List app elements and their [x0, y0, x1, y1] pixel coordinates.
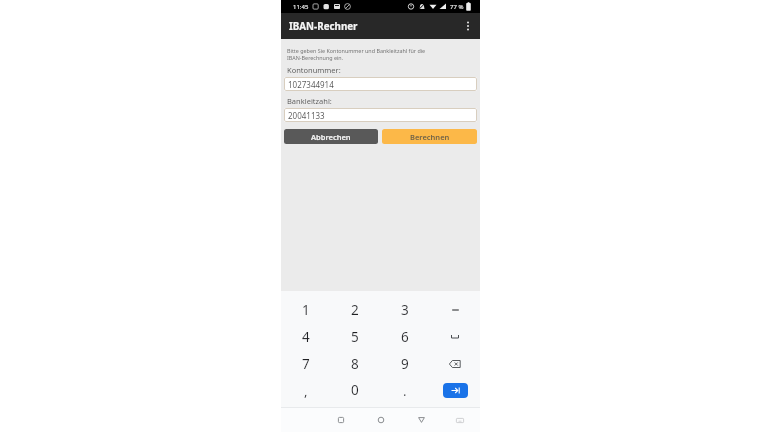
- button[interactable]: 7: [281, 350, 330, 377]
- staticText: 20041133: [288, 110, 325, 121]
- button[interactable]: 20041133: [284, 108, 477, 122]
- button[interactable]: 2: [330, 296, 380, 323]
- button[interactable]: 3: [380, 296, 430, 323]
- button[interactable]: [333, 412, 349, 428]
- staticText: 0: [351, 381, 359, 399]
- staticText: Bankleitzahl:: [287, 96, 332, 106]
- staticText: 2: [351, 301, 359, 319]
- staticText: IBAN-Rechner: [289, 20, 358, 33]
- button[interactable]: 1: [281, 296, 330, 323]
- button[interactable]: Abbrechen: [284, 129, 378, 144]
- button[interactable]: [430, 377, 480, 403]
- button[interactable]: .: [380, 377, 430, 403]
- button[interactable]: ,: [281, 377, 330, 403]
- staticText: 3: [401, 301, 409, 319]
- button[interactable]: [430, 350, 480, 377]
- button[interactable]: [430, 323, 480, 350]
- button[interactable]: [454, 414, 466, 426]
- button[interactable]: 8: [330, 350, 380, 377]
- button[interactable]: 0: [330, 377, 380, 403]
- staticText: 11:45: [293, 3, 309, 11]
- button[interactable]: [443, 383, 468, 398]
- staticText: .: [403, 382, 407, 400]
- button[interactable]: 6: [380, 323, 430, 350]
- button[interactable]: [463, 21, 473, 31]
- staticText: 8: [351, 355, 359, 373]
- staticText: 4: [302, 328, 310, 346]
- staticText: 5: [351, 328, 359, 346]
- button[interactable]: 5: [330, 323, 380, 350]
- button[interactable]: [413, 412, 429, 428]
- staticText: 9: [401, 355, 409, 373]
- button[interactable]: 1027344914: [284, 77, 477, 91]
- button[interactable]: [373, 412, 389, 428]
- staticText: 1: [302, 301, 310, 319]
- staticText: Kontonummer:: [287, 65, 341, 75]
- button[interactable]: [430, 296, 480, 323]
- staticText: Abbrechen: [311, 132, 351, 142]
- staticText: 77 %: [450, 3, 464, 11]
- staticText: 7: [302, 355, 310, 373]
- staticText: ,: [304, 382, 308, 400]
- staticText: Berechnen: [410, 132, 450, 142]
- staticText: 6: [401, 328, 409, 346]
- button[interactable]: Berechnen: [382, 129, 477, 144]
- staticText: Bitte geben Sie Kontonummer und Bankleit…: [287, 47, 426, 61]
- button[interactable]: 9: [380, 350, 430, 377]
- staticText: 1027344914: [288, 79, 334, 90]
- button[interactable]: 4: [281, 323, 330, 350]
